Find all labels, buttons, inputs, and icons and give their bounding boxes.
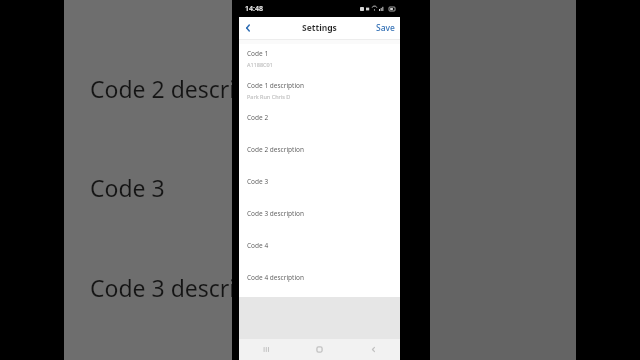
staticText: Code 4 bbox=[247, 241, 269, 250]
staticText: Code 2 bbox=[247, 113, 269, 122]
staticText: Code 3 description bbox=[247, 209, 305, 218]
button[interactable]: Code 2 bbox=[239, 108, 400, 140]
button[interactable]: Back bbox=[347, 339, 400, 360]
staticText: Code 3 description bbox=[90, 272, 292, 303]
button[interactable]: Code 4 bbox=[239, 236, 400, 268]
button[interactable]: Home bbox=[293, 339, 346, 360]
staticText: 14:48 bbox=[245, 4, 263, 14]
staticText: Save bbox=[376, 22, 395, 34]
staticText: Park Run Chris D bbox=[247, 93, 291, 100]
button[interactable]: Recents bbox=[240, 339, 293, 360]
staticText: Code 3 bbox=[90, 172, 165, 203]
button[interactable]: Back bbox=[239, 19, 257, 37]
staticText: Code 1 bbox=[247, 49, 269, 58]
staticText: Code 2 description bbox=[247, 145, 305, 154]
staticText: Code 4 description bbox=[247, 273, 305, 282]
staticText: A1188C01 bbox=[247, 61, 273, 68]
staticText: Code 2 description bbox=[90, 73, 292, 104]
button[interactable]: Save bbox=[371, 17, 400, 39]
button[interactable]: Code 1 description bbox=[239, 76, 400, 108]
button[interactable]: Code 3 bbox=[239, 172, 400, 204]
button[interactable]: Code 4 description bbox=[239, 268, 400, 297]
staticText: Code 1 description bbox=[247, 81, 305, 90]
button[interactable]: Code 1 bbox=[239, 44, 400, 76]
staticText: Code 3 bbox=[247, 177, 269, 186]
staticText: Settings bbox=[302, 22, 337, 34]
button[interactable]: Code 3 description bbox=[239, 204, 400, 236]
button[interactable]: Code 2 description bbox=[239, 140, 400, 172]
